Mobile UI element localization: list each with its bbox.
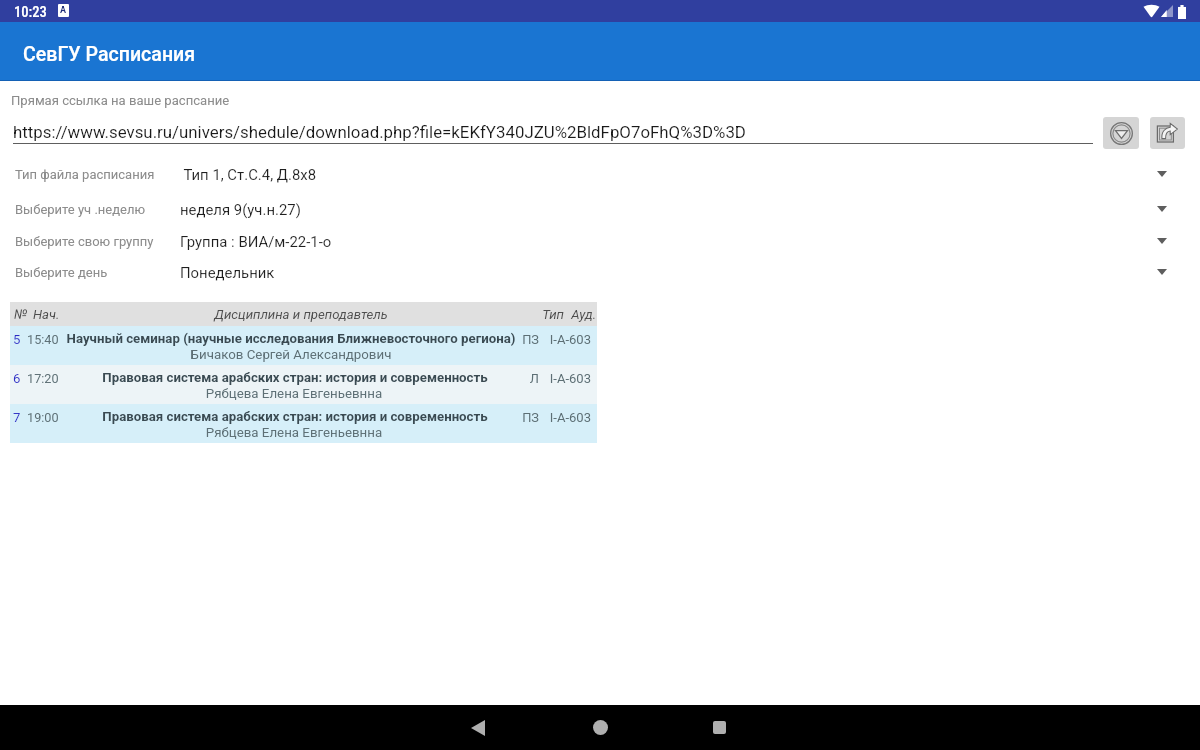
staticText: Научный семинар (научные исследования Бл…	[46, 331, 536, 347]
staticText: неделя 9(уч.н.27)	[180, 201, 301, 218]
staticText: 6	[13, 371, 21, 386]
staticText: Рябцева Елена Евгеньевнна	[49, 425, 539, 441]
button[interactable]: 5	[10, 326, 597, 365]
staticText: Бичаков Сергей Александрович	[46, 347, 536, 363]
staticText: Тип файла расписания	[15, 167, 155, 182]
staticText: Понедельник	[180, 264, 275, 281]
staticText: СевГУ Расписания	[23, 43, 196, 66]
staticText: Прямая ссылка на ваше распсание	[11, 93, 230, 108]
staticText: Группа : ВИА/м-22-1-о	[180, 233, 332, 250]
button[interactable]: Home	[575, 705, 625, 750]
staticText: 7	[13, 410, 21, 425]
button[interactable]: 7	[10, 404, 597, 443]
staticText: I-A-603	[491, 410, 591, 425]
staticText: Правовая система арабских стран: история…	[50, 370, 540, 386]
button[interactable]: Выберите уч .неделю	[0, 193, 1200, 225]
button[interactable]: 6	[10, 365, 597, 404]
button[interactable]: Тип файла расписания	[0, 158, 1200, 190]
button[interactable]: Share	[1150, 117, 1185, 149]
staticText: Выберите свою группу	[15, 234, 154, 249]
staticText: 5	[13, 332, 21, 347]
staticText: Тип	[464, 307, 564, 322]
staticText: Ауд.	[496, 307, 596, 322]
staticText: Выберите день	[15, 265, 108, 280]
staticText: 17:20	[27, 371, 59, 386]
staticText: №	[14, 307, 28, 322]
staticText: Дисциплина и преподавтель	[117, 307, 485, 322]
button[interactable]: Выберите свою группу	[0, 225, 1200, 257]
staticText: A	[60, 5, 67, 16]
staticText: ПЗ	[439, 410, 539, 425]
staticText: I-A-603	[491, 332, 591, 347]
button[interactable]: Back	[453, 705, 503, 750]
button[interactable]: Download	[1103, 117, 1139, 149]
button[interactable]: Выберите день	[0, 256, 1200, 288]
button[interactable]: Recents	[694, 705, 744, 750]
staticText: ПЗ	[439, 332, 539, 347]
staticText: 19:00	[27, 410, 59, 425]
staticText: Правовая система арабских стран: история…	[50, 409, 540, 425]
staticText: Выберите уч .неделю	[15, 202, 146, 217]
button[interactable]: https://www.sevsu.ru/univers/shedule/dow…	[13, 114, 1093, 144]
staticText: Рябцева Елена Евгеньевнна	[49, 386, 539, 402]
staticText: 15:40	[27, 332, 59, 347]
staticText: Л	[439, 371, 539, 386]
staticText: Тип 1, Ст.С.4, Д.8x8	[180, 166, 317, 183]
staticText: I-A-603	[491, 371, 591, 386]
staticText: https://www.sevsu.ru/univers/shedule/dow…	[13, 122, 746, 142]
staticText: 10:23	[14, 3, 47, 20]
staticText: Нач.	[33, 307, 60, 322]
